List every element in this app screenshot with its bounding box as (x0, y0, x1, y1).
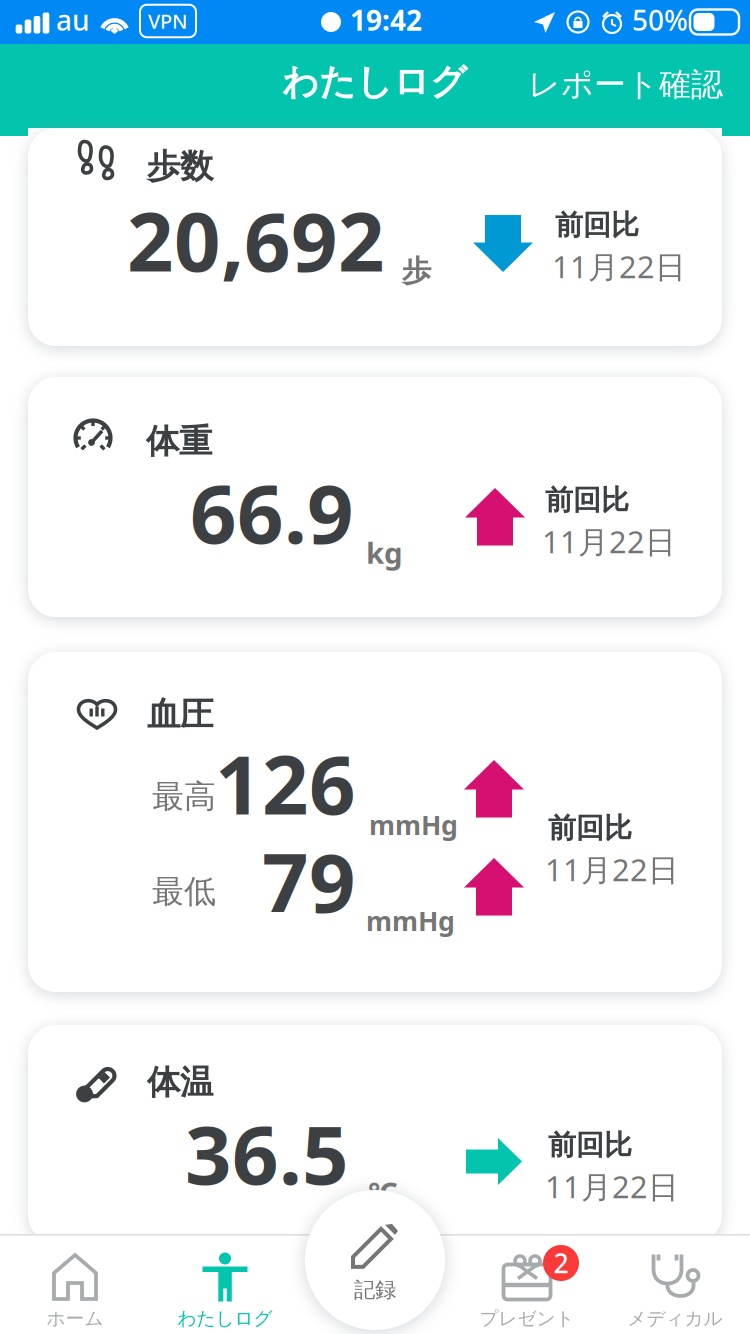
button[interactable]: 記録 (305, 1190, 445, 1330)
staticText: 体重 (146, 421, 212, 462)
staticText: mmHg (369, 807, 458, 842)
staticText: kg (366, 533, 403, 572)
staticText: ホーム (46, 1307, 103, 1330)
button[interactable]: ホーム (0, 1234, 150, 1334)
staticText: レポート確認 (528, 65, 723, 104)
staticText: 11月22日 (545, 849, 679, 890)
staticText: 20,692 (127, 186, 385, 294)
staticText: 前回比 (548, 1128, 632, 1162)
button[interactable]: レポート確認 (514, 44, 745, 125)
staticText: 79 (262, 827, 356, 935)
staticText: 最低 (152, 872, 216, 911)
button[interactable]: わたしログ (150, 1234, 300, 1334)
staticText: 最高 (152, 777, 216, 816)
staticText: プレゼント (479, 1307, 574, 1330)
staticText: 歩 (402, 253, 431, 289)
staticText: 前回比 (548, 811, 632, 845)
staticText: au (56, 1, 90, 39)
staticText: 126 (215, 729, 356, 837)
staticText: 19:42 (350, 1, 422, 39)
staticText: 11月22日 (552, 246, 686, 287)
staticText: 50% (632, 1, 688, 39)
staticText: 血圧 (147, 694, 213, 735)
staticText: 66.9 (190, 458, 354, 566)
staticText: ℃ (368, 1173, 397, 1212)
staticText: メディカル (627, 1307, 722, 1330)
button[interactable]: メディカル (600, 1234, 750, 1334)
staticText: 体温 (147, 1062, 213, 1103)
staticText: 記録 (354, 1277, 396, 1303)
staticText: mmHg (366, 903, 455, 938)
button[interactable]: プレゼント (452, 1234, 602, 1334)
staticText: 歩数 (147, 146, 213, 187)
staticText: 前回比 (555, 208, 639, 242)
staticText: VPN (148, 8, 188, 34)
staticText: 2 (553, 1245, 568, 1281)
staticText: 11月22日 (545, 1166, 679, 1207)
staticText: 前回比 (545, 483, 629, 517)
staticText: わたしログ (282, 60, 467, 104)
staticText: 11月22日 (542, 521, 676, 562)
staticText: わたしログ (177, 1307, 272, 1330)
staticText: 36.5 (185, 1099, 349, 1207)
